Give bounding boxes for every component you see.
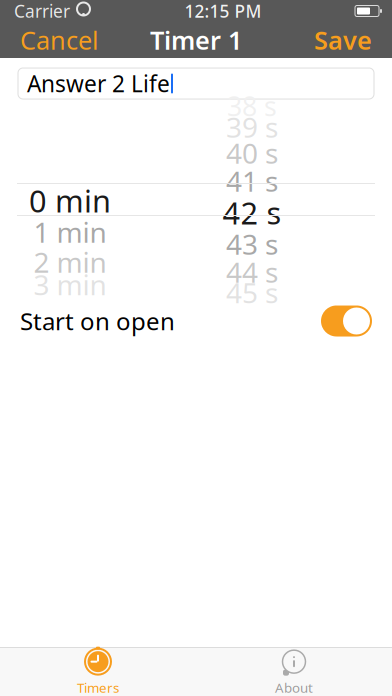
staticText: 41 s — [226, 162, 278, 200]
staticText: 1 min — [33, 213, 106, 251]
staticText: Save — [314, 23, 372, 57]
staticText: 42 s — [222, 192, 281, 233]
staticText: 0 min — [29, 180, 111, 221]
staticText: Cancel — [20, 23, 99, 57]
staticText: About — [275, 679, 313, 696]
staticText: Timer 1 — [150, 23, 242, 57]
staticText: 2 min — [33, 243, 106, 281]
staticText: 40 s — [226, 134, 278, 172]
staticText: 12:15 PM — [184, 0, 261, 22]
staticText: Carrier — [14, 0, 70, 22]
staticText: 39 s — [226, 108, 278, 146]
staticText: Start on open — [20, 305, 175, 337]
button[interactable]: Save — [300, 22, 386, 58]
staticText: Timers — [77, 679, 119, 696]
staticText: 44 s — [226, 253, 278, 291]
button[interactable]: Cancel — [6, 22, 113, 58]
staticText: Answer 2 Life — [27, 68, 170, 98]
button[interactable]: About — [196, 648, 392, 696]
button[interactable]: Start on open — [321, 305, 372, 336]
staticText: 45 s — [226, 274, 278, 311]
button[interactable]: Timers — [0, 648, 196, 696]
staticText: 38 s — [227, 88, 277, 124]
staticText: 43 s — [226, 225, 278, 263]
staticText: 3 min — [33, 266, 106, 303]
